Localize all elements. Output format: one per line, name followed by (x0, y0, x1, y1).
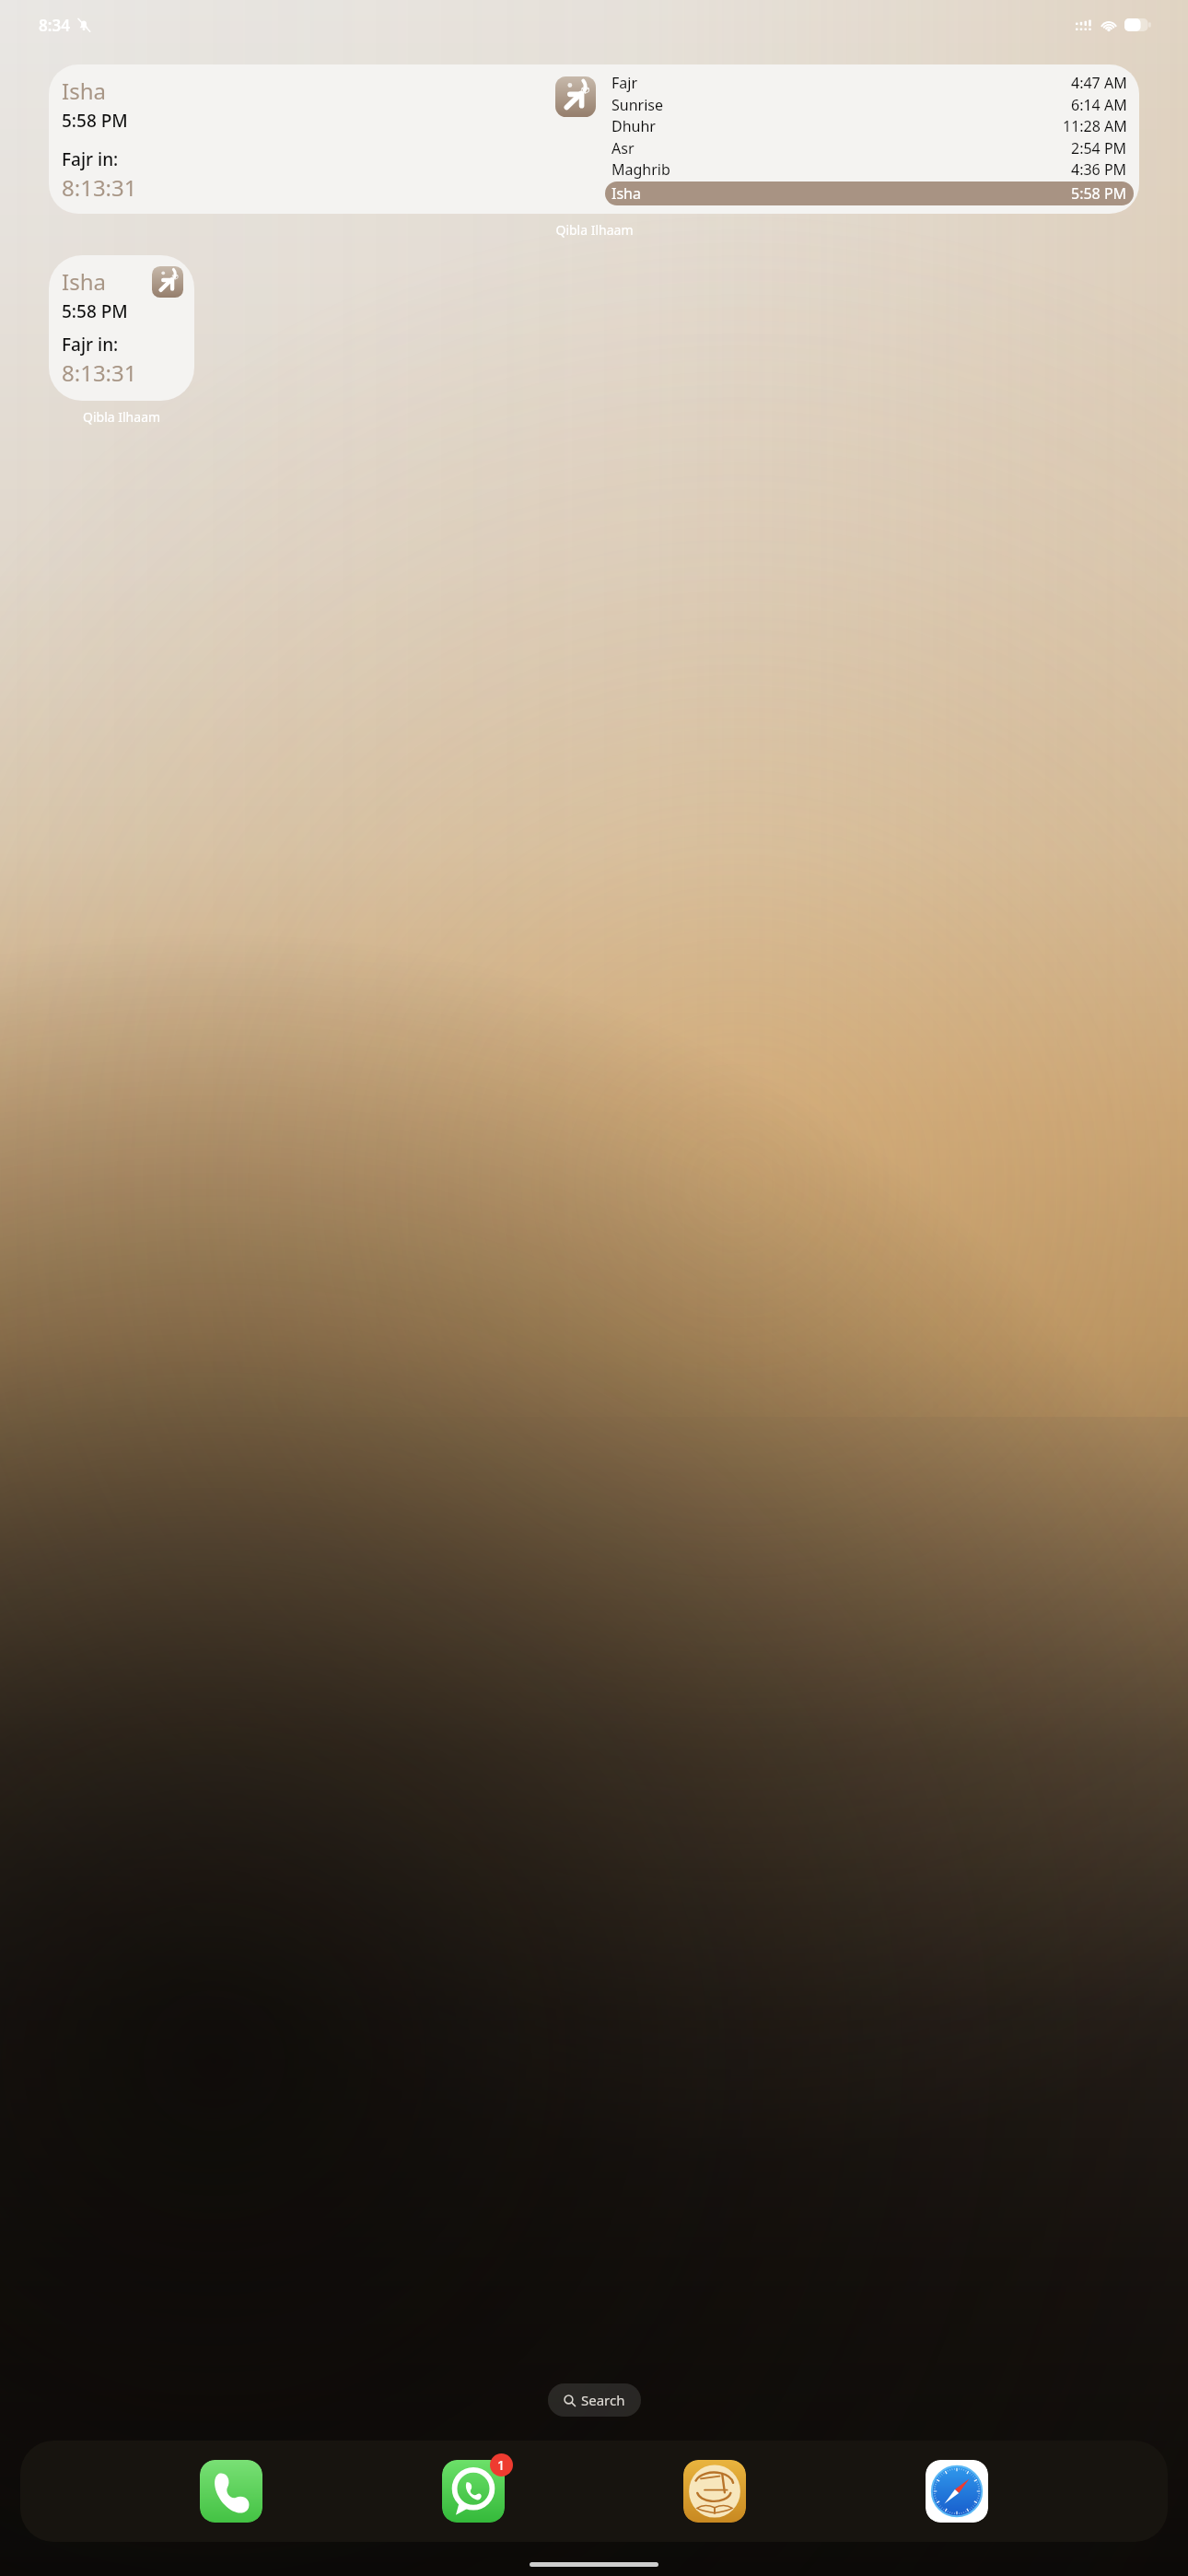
staticText: Qibla Ilhaam (555, 221, 634, 239)
staticText: 8:13:31 (62, 357, 137, 388)
staticText: Fajr (611, 73, 638, 93)
button[interactable]: Quran (683, 2460, 746, 2523)
staticText: Isha (611, 183, 641, 204)
staticText: 5:58 PM (62, 109, 128, 133)
staticText: 6:14 AM (1071, 95, 1127, 115)
staticText: Fajr in: (62, 147, 119, 171)
staticText: Fajr in: (62, 333, 119, 357)
button[interactable]: Search (564, 2391, 625, 2409)
staticText: 5:58 PM (1071, 183, 1127, 204)
button[interactable]: Phone (200, 2460, 262, 2523)
staticText: Asr (611, 138, 635, 158)
staticText: Sunrise (611, 95, 663, 115)
staticText: Qibla Ilhaam (83, 408, 161, 426)
button[interactable]: Isha (49, 64, 1139, 214)
staticText: 8:13:31 (62, 172, 137, 203)
staticText: 4:47 AM (1071, 73, 1127, 93)
staticText: 11:28 AM (1063, 116, 1127, 136)
button[interactable]: Isha (49, 255, 194, 401)
staticText: Dhuhr (611, 116, 656, 136)
staticText: 1 (497, 2456, 506, 2474)
staticText: 4:36 PM (1071, 159, 1127, 180)
staticText: Isha (62, 266, 106, 297)
staticText: Isha (62, 76, 106, 106)
staticText: 2:54 PM (1071, 138, 1127, 158)
staticText: 8:34 (39, 15, 70, 36)
button[interactable]: WhatsApp (442, 2460, 505, 2523)
button[interactable]: Qibla Ilhaam (152, 266, 183, 298)
staticText: 5:58 PM (62, 299, 128, 323)
button[interactable]: Qibla Ilhaam (555, 76, 596, 117)
button[interactable]: Safari (926, 2460, 988, 2523)
staticText: Search (581, 2391, 625, 2409)
staticText: Maghrib (611, 159, 670, 180)
